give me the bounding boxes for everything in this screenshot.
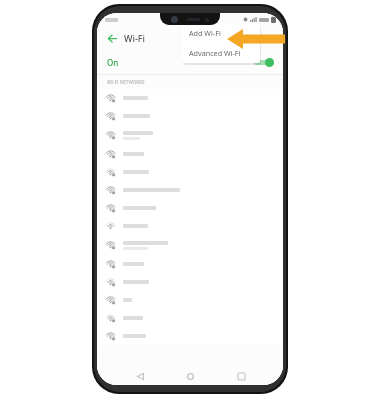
staticText: On	[107, 57, 119, 68]
button[interactable]: Recent apps	[233, 368, 249, 384]
button[interactable]: Arrow highlighting Add Wi-Fi	[227, 29, 285, 49]
button[interactable]	[97, 107, 283, 125]
staticText: WI-FI NETWORKS	[107, 79, 145, 85]
button[interactable]	[97, 145, 283, 163]
button[interactable]: Add Wi-Fi	[182, 23, 260, 43]
button[interactable]	[97, 235, 283, 255]
button[interactable]: Back	[103, 29, 121, 47]
button[interactable]	[97, 309, 283, 327]
button[interactable]	[97, 163, 283, 181]
staticText: Wi-Fi	[124, 32, 145, 44]
button[interactable]	[97, 89, 283, 107]
button[interactable]	[97, 125, 283, 145]
button[interactable]: Back	[132, 368, 148, 384]
button[interactable]	[97, 181, 283, 199]
button[interactable]: Home	[182, 368, 198, 384]
button[interactable]	[97, 273, 283, 291]
button[interactable]	[97, 255, 283, 273]
button[interactable]: Advanced Wi-Fi	[182, 43, 260, 63]
button[interactable]	[97, 217, 283, 235]
button[interactable]: On	[97, 50, 283, 74]
staticText: Advanced Wi-Fi	[189, 48, 241, 58]
button[interactable]	[97, 327, 283, 345]
button[interactable]	[97, 199, 283, 217]
button[interactable]	[97, 291, 283, 309]
staticText: Add Wi-Fi	[189, 28, 221, 38]
